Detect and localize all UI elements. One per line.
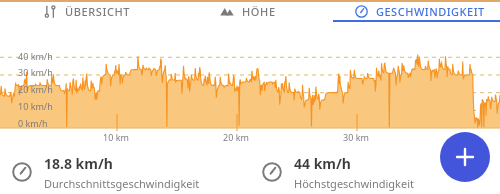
staticText: Höchstgeschwindigkeit [294, 176, 414, 191]
staticText: 44 km/h [294, 154, 351, 173]
staticText: 18.8 km/h [44, 154, 113, 173]
staticText: Durchschnittsgeschwindigkeit [44, 176, 200, 191]
staticText: HÖHE [242, 4, 276, 19]
button[interactable]: Add [440, 132, 490, 182]
staticText: 40 km/h [18, 50, 53, 62]
staticText: 20 km [223, 131, 249, 143]
staticText: 10 km/h [18, 100, 53, 112]
staticText: GESCHWINDIGKEIT [376, 4, 485, 19]
button[interactable]: 18.8 km/h [0, 150, 250, 194]
button[interactable]: 44 km/h [250, 150, 500, 194]
staticText: 10 km [103, 131, 129, 143]
staticText: ÜBERSICHT [65, 4, 131, 19]
button[interactable]: ÜBERSICHT [24, 0, 184, 22]
staticText: 20 km/h [18, 83, 53, 95]
staticText: 30 km/h [18, 66, 53, 78]
staticText: 0 km/h [18, 117, 48, 129]
button[interactable]: HÖHE [200, 0, 320, 22]
staticText: 30 km [343, 131, 369, 143]
button[interactable]: GESCHWINDIGKEIT [333, 0, 500, 22]
